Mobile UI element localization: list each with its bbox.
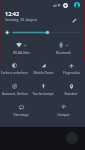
button[interactable]: WLAN-Netz — [0, 38, 42, 55]
staticText: Bluetooth — [56, 51, 71, 55]
button[interactable]: Bluetooth — [42, 38, 85, 55]
button[interactable]: Power menu — [66, 132, 78, 144]
button[interactable]: Edit tiles — [70, 16, 79, 25]
staticText: Hotspot — [57, 113, 70, 117]
staticText: Automat. Drehen — [2, 92, 28, 96]
button[interactable]: Standort — [57, 80, 85, 96]
staticText: Standort — [64, 92, 78, 96]
button[interactable]: Brightness — [0, 27, 85, 38]
button[interactable]: Automat. Drehen — [0, 80, 29, 96]
staticText: Sonntag, 28. August — [5, 17, 38, 22]
button[interactable]: Farben umkehren — [0, 59, 29, 75]
button[interactable]: Taschenlampe — [29, 80, 57, 96]
button[interactable]: Mobile Daten — [29, 59, 57, 75]
button[interactable]: User profile — [73, 1, 81, 9]
button[interactable]: Flugmodus — [57, 59, 85, 75]
button[interactable]: Hotspot — [42, 101, 85, 117]
staticText: Dienstage — [13, 113, 29, 117]
staticText: 12:42 — [5, 10, 20, 17]
button[interactable]: Settings — [61, 1, 69, 9]
staticText: Mobile Daten — [33, 71, 54, 75]
staticText: Taschenlampe — [32, 92, 54, 96]
button[interactable]: Dienstage — [0, 101, 42, 117]
staticText: Farben umkehren — [1, 71, 28, 75]
staticText: Flugmodus — [63, 71, 80, 75]
staticText: WLAN-Netz — [13, 51, 30, 55]
